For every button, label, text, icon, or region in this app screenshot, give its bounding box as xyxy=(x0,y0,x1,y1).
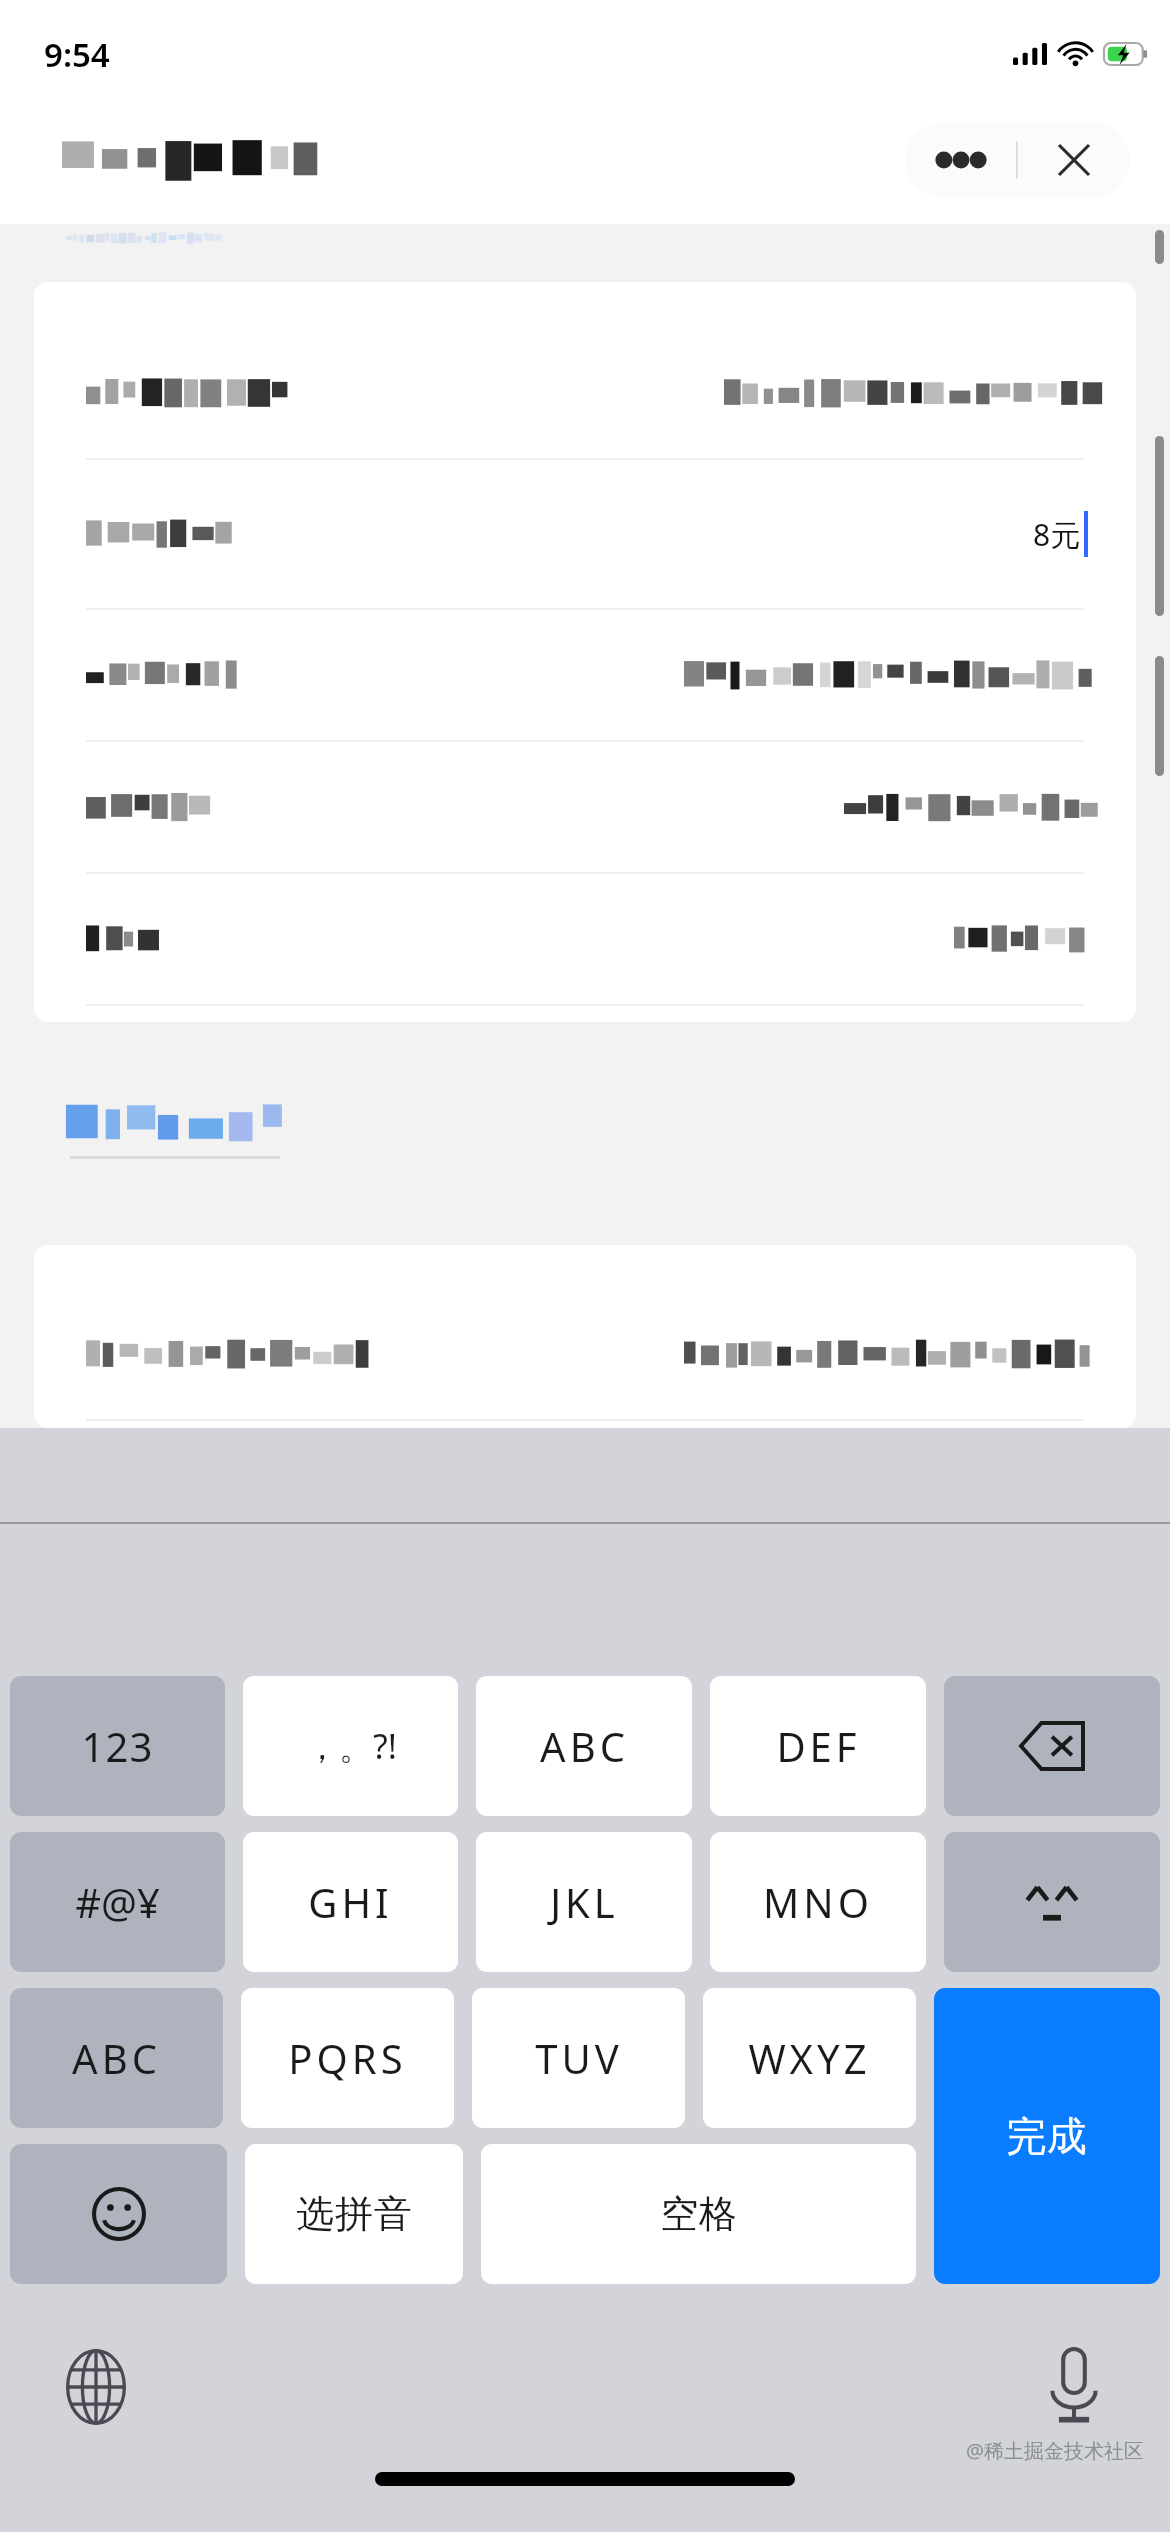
button[interactable]: ，。?! xyxy=(243,1676,458,1816)
button[interactable]: #@¥ xyxy=(10,1832,225,1972)
staticText: 完成 xyxy=(1006,2111,1088,2161)
staticText: ，。?! xyxy=(305,1723,397,1769)
button[interactable]: WXYZ xyxy=(703,1988,916,2128)
button[interactable]: JKL xyxy=(476,1832,692,1972)
staticText: 空格 xyxy=(660,2190,738,2238)
button[interactable]: 123 xyxy=(10,1676,225,1816)
button[interactable]: 空格 xyxy=(481,2144,916,2284)
button[interactable]: Voice input xyxy=(1036,2349,1112,2425)
staticText: DEF xyxy=(776,1719,861,1773)
button[interactable] xyxy=(34,1289,1136,1419)
button[interactable]: Kaomoji xyxy=(944,1832,1160,1972)
staticText: JKL xyxy=(550,1875,619,1929)
button[interactable]: 完成 xyxy=(934,1988,1160,2284)
button[interactable]: More xyxy=(905,122,1016,198)
button[interactable]: 8元 xyxy=(34,460,1136,608)
button[interactable]: DEF xyxy=(710,1676,926,1816)
button[interactable] xyxy=(34,742,1136,872)
staticText: WXYZ xyxy=(748,2031,871,2085)
button[interactable]: Close xyxy=(1018,122,1130,198)
button[interactable]: TUV xyxy=(472,1988,685,2128)
button[interactable]: Switch keyboard xyxy=(58,2349,134,2425)
button[interactable]: GHI xyxy=(243,1832,458,1972)
button[interactable] xyxy=(34,328,1136,458)
button[interactable]: MNO xyxy=(710,1832,926,1972)
button[interactable] xyxy=(34,610,1136,740)
staticText: ABC xyxy=(72,2031,161,2085)
staticText: TUV xyxy=(535,2031,623,2085)
button[interactable]: PQRS xyxy=(241,1988,454,2128)
button[interactable]: Emoji xyxy=(10,2144,227,2284)
staticText: 123 xyxy=(81,1719,154,1773)
staticText: GHI xyxy=(308,1875,393,1929)
staticText: 选拼音 xyxy=(296,2190,413,2238)
staticText: @稀土掘金技术社区 xyxy=(966,2437,1144,2464)
button[interactable]: ABC xyxy=(476,1676,692,1816)
staticText: MNO xyxy=(763,1875,873,1929)
staticText: #@¥ xyxy=(75,1875,160,1929)
staticText: 8元 xyxy=(1033,514,1081,555)
button[interactable]: 选拼音 xyxy=(245,2144,463,2284)
button[interactable]: ABC xyxy=(10,1988,223,2128)
staticText: PQRS xyxy=(288,2031,407,2085)
staticText: 9:54 xyxy=(44,32,110,77)
button[interactable]: Delete xyxy=(944,1676,1160,1816)
staticText: ABC xyxy=(540,1719,629,1773)
button[interactable] xyxy=(34,874,1136,1004)
